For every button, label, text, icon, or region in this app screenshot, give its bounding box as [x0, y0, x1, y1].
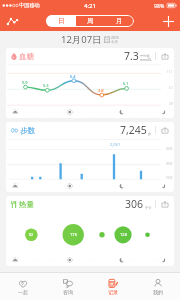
staticText: 2015	[111, 35, 119, 40]
button[interactable]: 我的	[135, 273, 180, 300]
staticText: 血糖	[19, 52, 34, 61]
staticText: 3.8	[98, 88, 104, 93]
staticText: 今天	[111, 40, 118, 44]
staticText: 128	[120, 232, 127, 237]
staticText: 4:21	[84, 2, 96, 10]
button[interactable]: 咨询	[45, 273, 90, 300]
staticText: 千卡	[145, 206, 152, 210]
button[interactable]: 12月07日	[61, 33, 119, 46]
staticText: 2000	[166, 162, 173, 166]
staticText: 中国移动	[19, 2, 40, 9]
staticText: 步数	[20, 126, 35, 135]
staticText: 6.1	[169, 86, 173, 90]
staticText: 咨询	[63, 289, 73, 295]
button[interactable]: 一起	[0, 273, 45, 300]
staticText: 3.9	[169, 102, 173, 106]
button[interactable]: Sync	[159, 51, 170, 62]
staticText: 176	[70, 232, 77, 237]
staticText: 6.1	[123, 81, 129, 86]
staticText: 周	[87, 17, 94, 25]
button[interactable]: 周	[76, 15, 105, 27]
staticText: 98%	[154, 2, 165, 9]
staticText: 平均值	[140, 54, 150, 58]
button[interactable]: 月	[105, 15, 134, 27]
button[interactable]: 日	[46, 15, 76, 27]
staticText: 记录	[108, 289, 118, 295]
staticText: 月	[116, 17, 123, 25]
staticText: 7.3	[124, 49, 139, 63]
staticText: 我的	[153, 289, 163, 295]
staticText: 一起	[18, 289, 28, 295]
staticText: 2,061	[110, 142, 121, 147]
staticText: 日	[58, 17, 65, 25]
staticText: 11.1	[167, 70, 173, 74]
staticText: 12月07日	[61, 33, 102, 46]
staticText: 5.3	[43, 83, 49, 88]
staticText: 3000	[166, 147, 173, 151]
button[interactable]: Add	[159, 12, 177, 30]
button[interactable]: Sync	[159, 199, 170, 210]
button[interactable]: Trends	[3, 12, 21, 30]
staticText: 步	[148, 132, 152, 136]
button[interactable]: 记录	[90, 273, 135, 300]
staticText: 7,245	[120, 123, 147, 137]
staticText: 1000	[166, 176, 173, 180]
staticText: mmol/L	[140, 58, 152, 62]
staticText: 热量	[19, 200, 34, 209]
staticText: 82	[29, 232, 33, 237]
button[interactable]: Sync	[159, 125, 170, 136]
staticText: 306	[125, 197, 144, 211]
staticText: 5.9	[22, 80, 28, 85]
staticText: 6.4	[70, 74, 76, 79]
